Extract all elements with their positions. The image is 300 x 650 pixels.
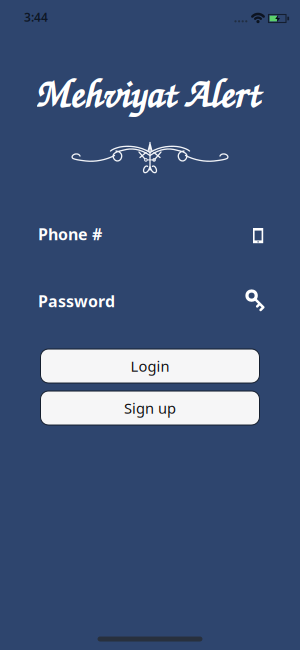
staticText: Mehviyat Alert <box>34 66 258 118</box>
button[interactable]: Password <box>0 279 300 323</box>
staticText: Phone # <box>38 223 102 245</box>
staticText: Login <box>130 356 169 376</box>
button[interactable]: Login <box>40 349 259 383</box>
staticText: Sign up <box>124 398 176 418</box>
staticText: Password <box>38 290 115 312</box>
button[interactable]: Phone # <box>0 212 300 256</box>
button[interactable]: Sign up <box>40 391 259 425</box>
staticText: 3:44 <box>24 9 48 25</box>
